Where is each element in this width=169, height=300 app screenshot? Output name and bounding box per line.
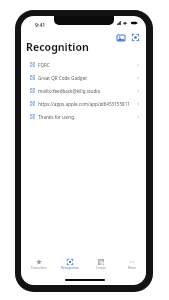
staticText: Create xyxy=(96,266,106,270)
staticText: https://apps.apple.com/app/id6453155811 xyxy=(38,101,134,107)
staticText: 9:41 xyxy=(35,21,46,28)
button[interactable]: Pick image xyxy=(115,32,126,43)
button[interactable]: Create xyxy=(87,256,115,274)
button[interactable]: Scan xyxy=(130,32,141,43)
staticText: mailto:feedback@kilig.studio xyxy=(38,88,134,94)
staticText: Recognition xyxy=(26,40,89,54)
button[interactable]: mailto:feedback@kilig.studio xyxy=(21,84,146,97)
button[interactable]: https://apps.apple.com/app/id6453155811 xyxy=(21,97,146,110)
button[interactable]: More xyxy=(118,256,146,274)
button[interactable]: Recognition xyxy=(56,256,84,274)
staticText: Great QR Code Gadget xyxy=(38,75,134,81)
staticText: Favourites xyxy=(31,266,47,270)
button[interactable]: Favourites xyxy=(25,256,53,274)
button[interactable]: Thanks for using. xyxy=(21,110,146,123)
button[interactable]: Great QR Code Gadget xyxy=(21,71,146,84)
staticText: More xyxy=(128,266,136,270)
button[interactable]: FQRC xyxy=(21,58,146,71)
staticText: FQRC xyxy=(38,62,134,68)
staticText: Thanks for using. xyxy=(38,114,134,120)
staticText: Recognition xyxy=(61,266,79,270)
